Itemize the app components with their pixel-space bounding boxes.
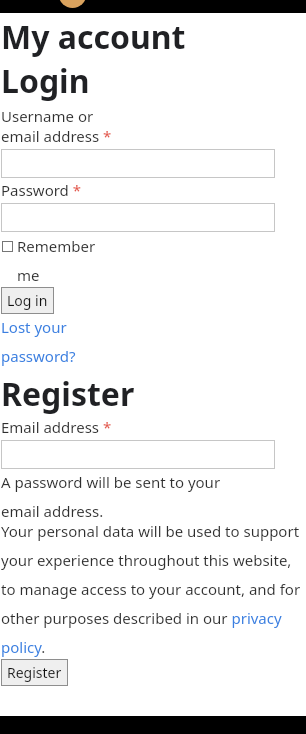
button[interactable]: Username or email address bbox=[1, 149, 275, 178]
staticText: Register bbox=[7, 663, 62, 682]
button[interactable]: Lost your password? bbox=[1, 317, 76, 366]
staticText: Login bbox=[1, 59, 90, 103]
staticText: A password will be sent to your email ad… bbox=[1, 472, 221, 521]
staticText: email address * bbox=[1, 126, 112, 146]
button[interactable]: Password bbox=[1, 203, 275, 232]
staticText: Register bbox=[1, 372, 135, 416]
staticText: Username or bbox=[1, 106, 94, 126]
button[interactable]: Email address bbox=[1, 440, 275, 469]
staticText: Password * bbox=[1, 180, 82, 200]
button[interactable]: Remember me bbox=[1, 236, 96, 285]
staticText: My account bbox=[1, 15, 186, 59]
button[interactable]: Log in bbox=[1, 287, 54, 314]
button[interactable]: Register bbox=[1, 659, 68, 686]
staticText: Log in bbox=[7, 291, 48, 310]
staticText: Remember me bbox=[17, 236, 96, 285]
staticText: Your personal data will be used to suppo… bbox=[1, 521, 305, 657]
staticText: Email address * bbox=[1, 417, 112, 437]
